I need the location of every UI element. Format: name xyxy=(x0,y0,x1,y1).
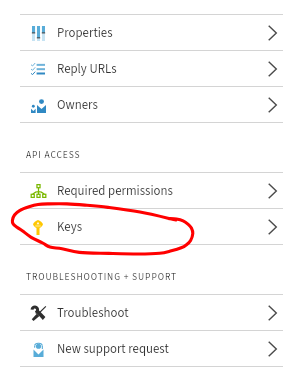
staticText: Troubleshoot xyxy=(57,304,129,322)
other: Hand-drawn highlight around Keys xyxy=(0,0,306,383)
staticText: Keys xyxy=(57,218,83,236)
staticText: TROUBLESHOOTING + SUPPORT xyxy=(26,270,178,284)
button[interactable]: Required permissions xyxy=(0,173,306,209)
staticText: New support request xyxy=(57,340,169,358)
button[interactable]: Properties xyxy=(0,15,306,51)
button[interactable]: Reply URLs xyxy=(0,51,306,87)
staticText: Required permissions xyxy=(57,182,173,200)
button[interactable]: Keys xyxy=(0,209,306,245)
staticText: Owners xyxy=(57,96,98,114)
staticText: API ACCESS xyxy=(26,148,81,162)
button[interactable]: New support request xyxy=(0,331,306,367)
staticText: Properties xyxy=(57,24,113,42)
button[interactable]: Troubleshoot xyxy=(0,295,306,331)
button[interactable]: Owners xyxy=(0,87,306,123)
staticText: Reply URLs xyxy=(57,60,117,78)
